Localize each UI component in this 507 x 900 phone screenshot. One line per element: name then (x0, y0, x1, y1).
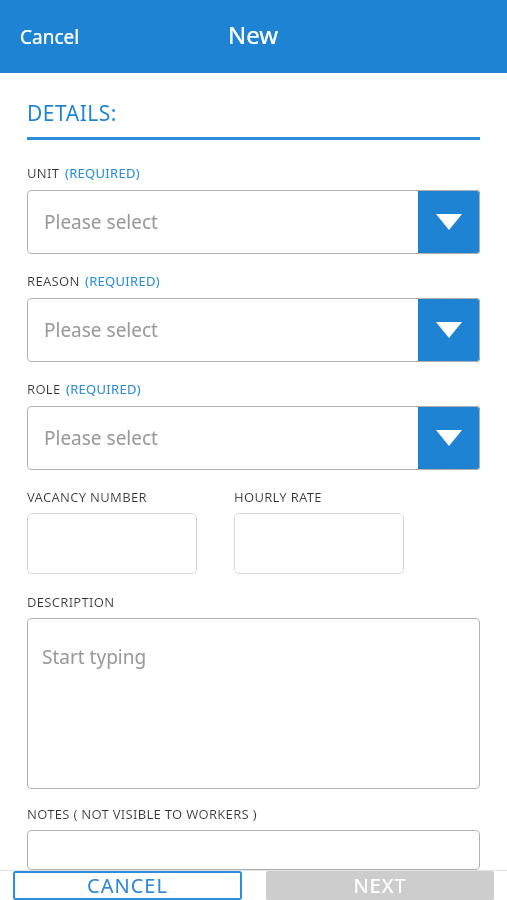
staticText: (REQUIRED) (85, 272, 160, 290)
button[interactable]: NEXT (266, 871, 494, 900)
staticText: Please select (44, 425, 158, 451)
staticText: DESCRIPTION (27, 593, 115, 611)
button[interactable]: Please select (27, 298, 480, 362)
other: Open dropdown (418, 190, 480, 254)
button[interactable]: Please select (27, 406, 480, 470)
button[interactable]: Cancel (0, 14, 100, 60)
staticText: NEXT (353, 872, 407, 899)
button[interactable]: Start typing (27, 618, 480, 789)
staticText: Cancel (20, 24, 80, 50)
button[interactable] (234, 513, 404, 574)
button[interactable]: CANCEL (13, 871, 242, 900)
staticText: CANCEL (87, 872, 168, 899)
staticText: ROLE (27, 380, 61, 398)
other: Open dropdown (418, 406, 480, 470)
staticText: New (228, 18, 279, 51)
staticText: Please select (44, 209, 158, 235)
other: Open dropdown (418, 298, 480, 362)
staticText: DETAILS: (27, 99, 117, 128)
staticText: HOURLY RATE (234, 488, 322, 506)
staticText: REASON (27, 272, 80, 290)
button[interactable] (27, 513, 197, 574)
staticText: UNIT (27, 164, 60, 182)
button[interactable] (27, 830, 480, 870)
staticText: Please select (44, 317, 158, 343)
staticText: (REQUIRED) (65, 164, 140, 182)
staticText: VACANCY NUMBER (27, 488, 147, 506)
staticText: (REQUIRED) (66, 380, 141, 398)
staticText: NOTES ( NOT VISIBLE TO WORKERS ) (27, 805, 257, 823)
staticText: Start typing (42, 644, 147, 670)
button[interactable]: Please select (27, 190, 480, 254)
